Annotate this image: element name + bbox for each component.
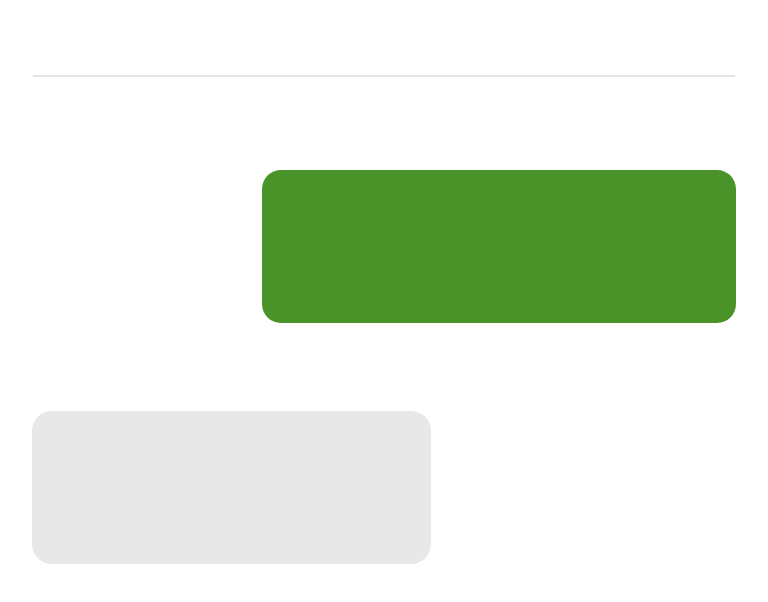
button[interactable]: Sent message <box>262 170 736 323</box>
